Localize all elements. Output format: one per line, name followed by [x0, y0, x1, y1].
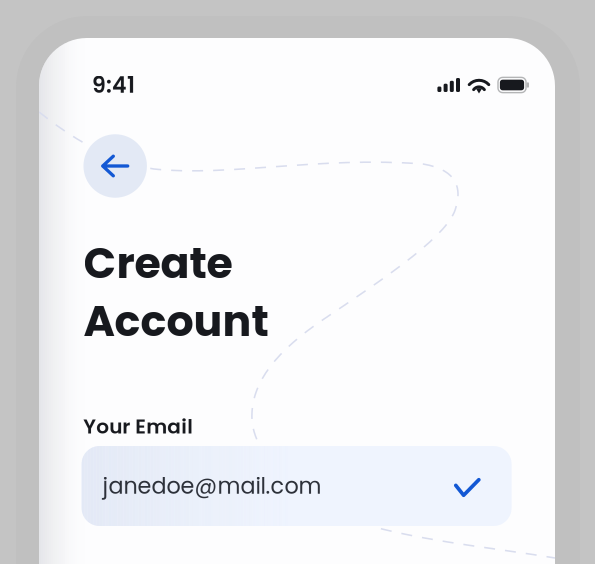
- button[interactable]: janedoe@mail.com: [82, 446, 512, 526]
- staticText: 9:41: [92, 70, 135, 100]
- staticText: Create: [83, 233, 232, 293]
- staticText: Account: [83, 291, 268, 351]
- button[interactable]: Back: [83, 134, 147, 198]
- staticText: Your Email: [83, 412, 193, 440]
- staticText: janedoe@mail.com: [102, 470, 321, 502]
